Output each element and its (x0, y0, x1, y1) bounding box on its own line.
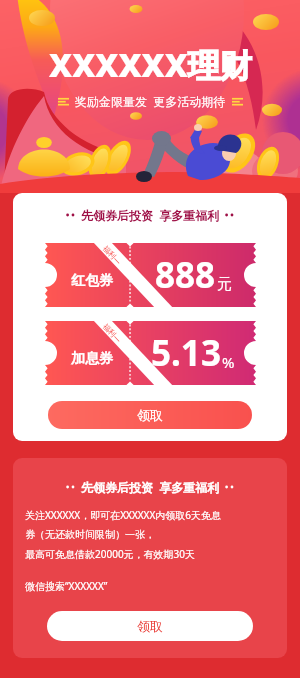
staticText: 先领券后投资 享多重福利 (81, 479, 220, 495)
staticText: 福利— (101, 321, 124, 345)
button[interactable]: 红包券 (45, 243, 256, 307)
button[interactable]: 领取 (48, 401, 252, 429)
button[interactable]: 领取 (47, 611, 253, 641)
staticText: 券（无还款时间限制）一张， (25, 528, 155, 541)
staticText: 关注XXXXXX，即可在XXXXXX内领取6天免息 (25, 508, 222, 522)
staticText: 奖励金限量发 更多活动期待 (75, 93, 226, 109)
staticText: 福利— (101, 243, 124, 267)
staticText: 先领券后投资 享多重福利 (81, 207, 220, 223)
staticText: 领取 (137, 407, 163, 423)
staticText: 5.13 (151, 329, 221, 377)
staticText: % (222, 352, 235, 372)
staticText: 加息券 (71, 350, 113, 368)
staticText: 888 (155, 251, 216, 299)
staticText: 微信搜索“XXXXXX” (25, 579, 108, 593)
staticText: 红包券 (71, 272, 113, 290)
staticText: 最高可免息借款20000元，有效期30天 (25, 547, 196, 561)
button[interactable]: 加息券 (45, 321, 256, 385)
staticText: 领取 (137, 618, 163, 634)
staticText: 元 (217, 275, 232, 294)
staticText: XXXXXX理财 (49, 43, 252, 87)
